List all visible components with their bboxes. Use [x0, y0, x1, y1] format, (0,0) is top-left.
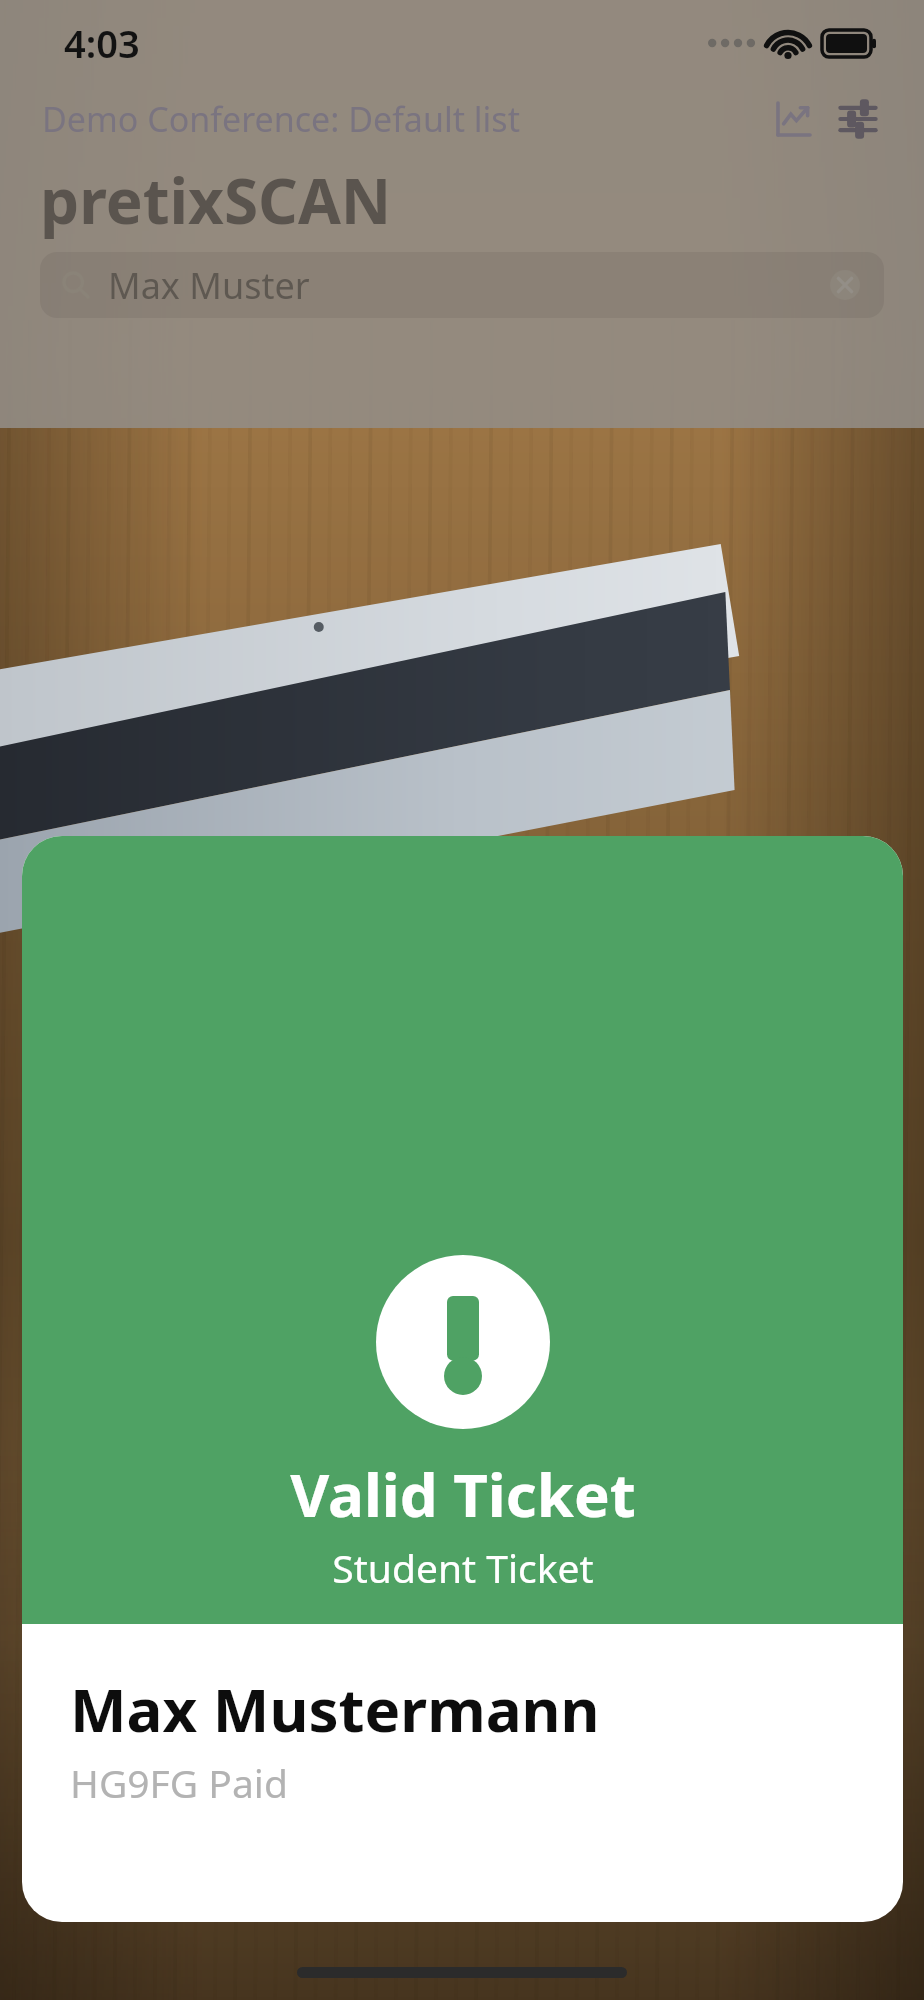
staticText: Student Ticket [332, 1541, 594, 1594]
staticText: Valid Ticket [290, 1453, 636, 1535]
button[interactable]: Statistics [768, 93, 820, 145]
staticText: HG9FG Paid [70, 1756, 288, 1809]
button[interactable]: Valid Ticket [22, 836, 903, 1922]
button[interactable]: Clear search [828, 268, 862, 302]
staticText: Max Muster [108, 261, 828, 310]
staticText: pretixSCAN [40, 158, 392, 242]
button[interactable]: Max Muster [40, 252, 884, 318]
staticText: 4:03 [64, 17, 140, 69]
staticText: Max Mustermann [70, 1668, 600, 1750]
button[interactable]: Filter settings [832, 93, 884, 145]
staticText: Demo Conference: Default list [42, 96, 768, 142]
